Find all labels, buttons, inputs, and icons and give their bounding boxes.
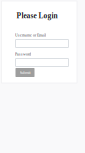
button[interactable]: Submit [15, 68, 34, 77]
staticText: Password [15, 52, 31, 56]
staticText: Username or Email [15, 33, 46, 37]
button[interactable]: Password [15, 58, 68, 66]
staticText: Please Login [16, 12, 57, 20]
button[interactable]: Username or Email [15, 39, 68, 47]
staticText: Submit [19, 70, 30, 75]
